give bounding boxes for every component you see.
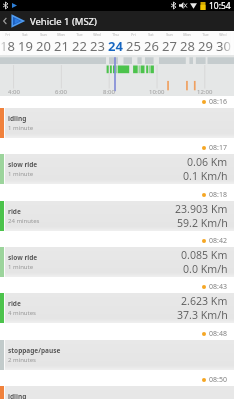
- staticText: 22: [72, 37, 87, 55]
- staticText: 08:17: [209, 143, 227, 153]
- staticText: 08:18: [209, 190, 227, 200]
- staticText: 59.2 Km/h: [177, 216, 228, 230]
- staticText: Wed: [219, 32, 227, 37]
- staticText: 24: [108, 37, 123, 55]
- staticText: stoppage/pause: [8, 346, 61, 355]
- staticText: 8:00: [103, 88, 115, 96]
- button[interactable]: idling: [0, 386, 234, 399]
- button[interactable]: ride: [0, 201, 234, 231]
- staticText: 10:00: [149, 88, 165, 96]
- staticText: idling: [8, 114, 27, 123]
- staticText: 23.903 Km: [175, 202, 228, 216]
- staticText: 29: [198, 37, 213, 55]
- button[interactable]: Mon: [178, 31, 196, 55]
- staticText: 2.623 Km: [181, 294, 228, 308]
- staticText: 10:54: [209, 0, 231, 11]
- button[interactable]: Sat: [16, 31, 34, 55]
- button[interactable]: Back: [0, 11, 9, 31]
- staticText: 28: [180, 37, 195, 55]
- staticText: 26: [144, 37, 159, 55]
- staticText: 4 minutes: [8, 309, 36, 317]
- staticText: Tue: [202, 32, 209, 37]
- staticText: 0.06 Km: [187, 155, 228, 169]
- staticText: Fri: [5, 32, 10, 37]
- staticText: 12:00: [197, 88, 213, 96]
- staticText: Vehicle 1 (MSZ): [30, 15, 97, 28]
- staticText: idling: [8, 392, 27, 399]
- button[interactable]: App logo: [9, 13, 25, 29]
- staticText: Wed: [93, 32, 101, 37]
- staticText: 20: [36, 37, 51, 55]
- button[interactable]: Sun: [160, 31, 178, 55]
- staticText: Mon: [57, 32, 65, 37]
- staticText: 24 minutes: [8, 217, 40, 225]
- staticText: 37.3 Km/h: [177, 308, 228, 322]
- staticText: Tue: [76, 32, 83, 37]
- button[interactable]: slow ride: [0, 247, 234, 277]
- staticText: 25: [126, 37, 141, 55]
- staticText: 08:16: [209, 97, 227, 107]
- staticText: 30: [216, 37, 231, 55]
- button[interactable]: Thu: [106, 31, 124, 55]
- button[interactable]: Sun: [34, 31, 52, 55]
- button[interactable]: Fri: [124, 31, 142, 55]
- staticText: ride: [8, 207, 21, 216]
- staticText: Fri: [131, 32, 136, 37]
- button[interactable]: slow ride: [0, 154, 234, 184]
- staticText: 27: [162, 37, 177, 55]
- staticText: 08:43: [209, 282, 227, 292]
- button[interactable]: ride: [0, 293, 234, 323]
- button[interactable]: stoppage/pause: [0, 340, 234, 370]
- button[interactable]: Wed: [88, 31, 106, 55]
- staticText: 0.1 Km/h: [183, 169, 228, 183]
- button[interactable]: Sat: [142, 31, 160, 55]
- staticText: ride: [8, 299, 21, 308]
- staticText: 1 minute: [8, 263, 34, 271]
- staticText: Sun: [166, 32, 173, 37]
- button[interactable]: Mon: [52, 31, 70, 55]
- staticText: 0.085 Km: [181, 248, 228, 262]
- staticText: 19: [18, 37, 33, 55]
- staticText: Thu: [112, 32, 119, 37]
- staticText: 1 minute: [8, 124, 34, 132]
- staticText: Sun: [40, 32, 47, 37]
- staticText: Sat: [22, 32, 28, 37]
- button[interactable]: idling: [0, 108, 234, 138]
- staticText: 18: [0, 37, 15, 55]
- staticText: Sat: [148, 32, 154, 37]
- staticText: 08:42: [209, 236, 227, 246]
- staticText: 08:50: [209, 375, 227, 385]
- button[interactable]: Fri: [0, 31, 16, 55]
- staticText: 08:48: [209, 329, 227, 339]
- staticText: slow ride: [8, 160, 38, 169]
- staticText: slow ride: [8, 253, 38, 262]
- staticText: 23: [90, 37, 105, 55]
- staticText: 0.0 Km/h: [183, 262, 228, 276]
- staticText: 2 minutes: [8, 356, 36, 364]
- button[interactable]: Tue: [196, 31, 214, 55]
- staticText: Mon: [183, 32, 191, 37]
- staticText: 6:00: [55, 88, 67, 96]
- staticText: 21: [54, 37, 69, 55]
- button[interactable]: Tue: [70, 31, 88, 55]
- button[interactable]: Wed: [214, 31, 232, 55]
- staticText: 1 minute: [8, 170, 34, 178]
- staticText: 4:00: [8, 88, 20, 96]
